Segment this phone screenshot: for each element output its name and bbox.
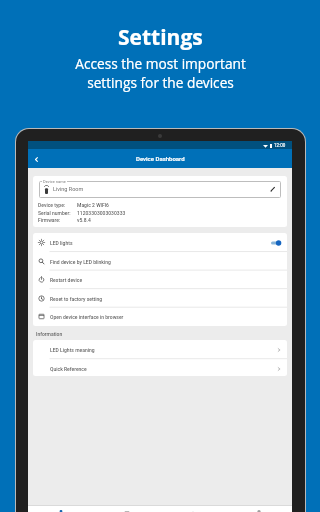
button[interactable]: Profile [226, 506, 292, 512]
button[interactable]: Find device by LED blinking [33, 252, 287, 271]
staticText: Firmware: [38, 217, 61, 223]
staticText: 12:00 [274, 143, 286, 148]
staticText: Settings [118, 23, 203, 52]
staticText: Restart device [50, 277, 83, 283]
staticText: Device name [43, 179, 66, 184]
button[interactable]: Open device interface in browser [33, 307, 287, 326]
staticText: 11203303003030333 [77, 210, 126, 216]
staticText: Information [36, 331, 63, 337]
button[interactable]: Restart device [33, 270, 287, 289]
staticText: Device type: [38, 202, 66, 208]
staticText: LED Lights meaning [50, 347, 95, 353]
staticText: Access the most important settings for t… [75, 54, 246, 92]
button[interactable]: Quick Reference [33, 359, 287, 376]
staticText: Reset to factory setting [50, 296, 103, 302]
button[interactable]: Devices [94, 506, 160, 512]
button[interactable]: Overview [28, 506, 94, 512]
button[interactable]: Edit device name [267, 183, 279, 195]
staticText: Magic 2 WIFI6 [77, 202, 109, 208]
button[interactable]: LED lights [33, 233, 287, 252]
button[interactable]: Back [30, 153, 42, 165]
button[interactable]: Reset to factory setting [33, 289, 287, 308]
staticText: Living Room [53, 186, 84, 192]
staticText: LED lights [50, 240, 73, 246]
staticText: Open device interface in browser [50, 314, 124, 320]
staticText: Device Dashboard [136, 155, 185, 162]
staticText: Quick Reference [50, 366, 87, 372]
staticText: Find device by LED blinking [50, 259, 111, 265]
button[interactable]: LED Lights meaning [33, 340, 287, 359]
staticText: Serial number: [38, 210, 71, 216]
staticText: v5.8.4 [77, 217, 91, 223]
